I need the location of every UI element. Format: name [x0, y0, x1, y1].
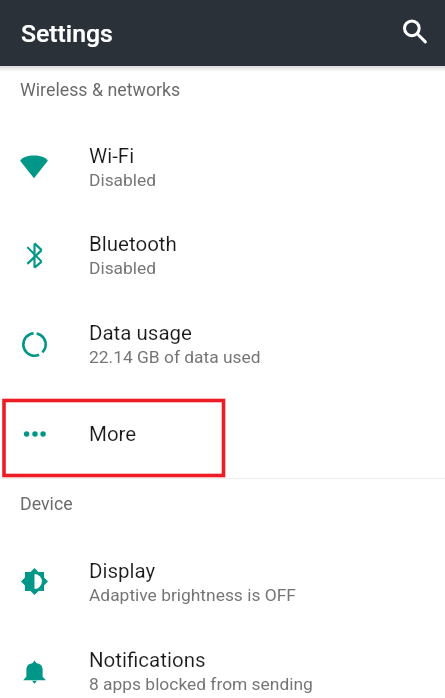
button[interactable]: More [0, 389, 445, 478]
staticText: Adaptive brightness is OFF [89, 585, 296, 605]
staticText: Bluetooth [89, 232, 177, 256]
button[interactable]: Bluetooth [0, 210, 445, 299]
button[interactable]: Display [0, 537, 445, 626]
staticText: 22.14 GB of data used [89, 347, 261, 367]
button[interactable]: Data usage [0, 299, 445, 388]
button[interactable]: Search [387, 5, 443, 61]
button[interactable]: Notifications [0, 626, 445, 698]
staticText: 8 apps blocked from sending [89, 674, 313, 694]
staticText: Notifications [89, 648, 206, 672]
staticText: Settings [21, 19, 113, 48]
staticText: Disabled [89, 258, 157, 278]
staticText: Wireless & networks [20, 79, 181, 100]
staticText: Data usage [89, 321, 192, 345]
staticText: More [89, 422, 137, 446]
button[interactable]: Wi-Fi [0, 122, 445, 211]
staticText: Wi-Fi [89, 144, 135, 168]
staticText: Display [89, 559, 156, 583]
staticText: Disabled [89, 170, 157, 190]
staticText: Device [20, 493, 73, 514]
